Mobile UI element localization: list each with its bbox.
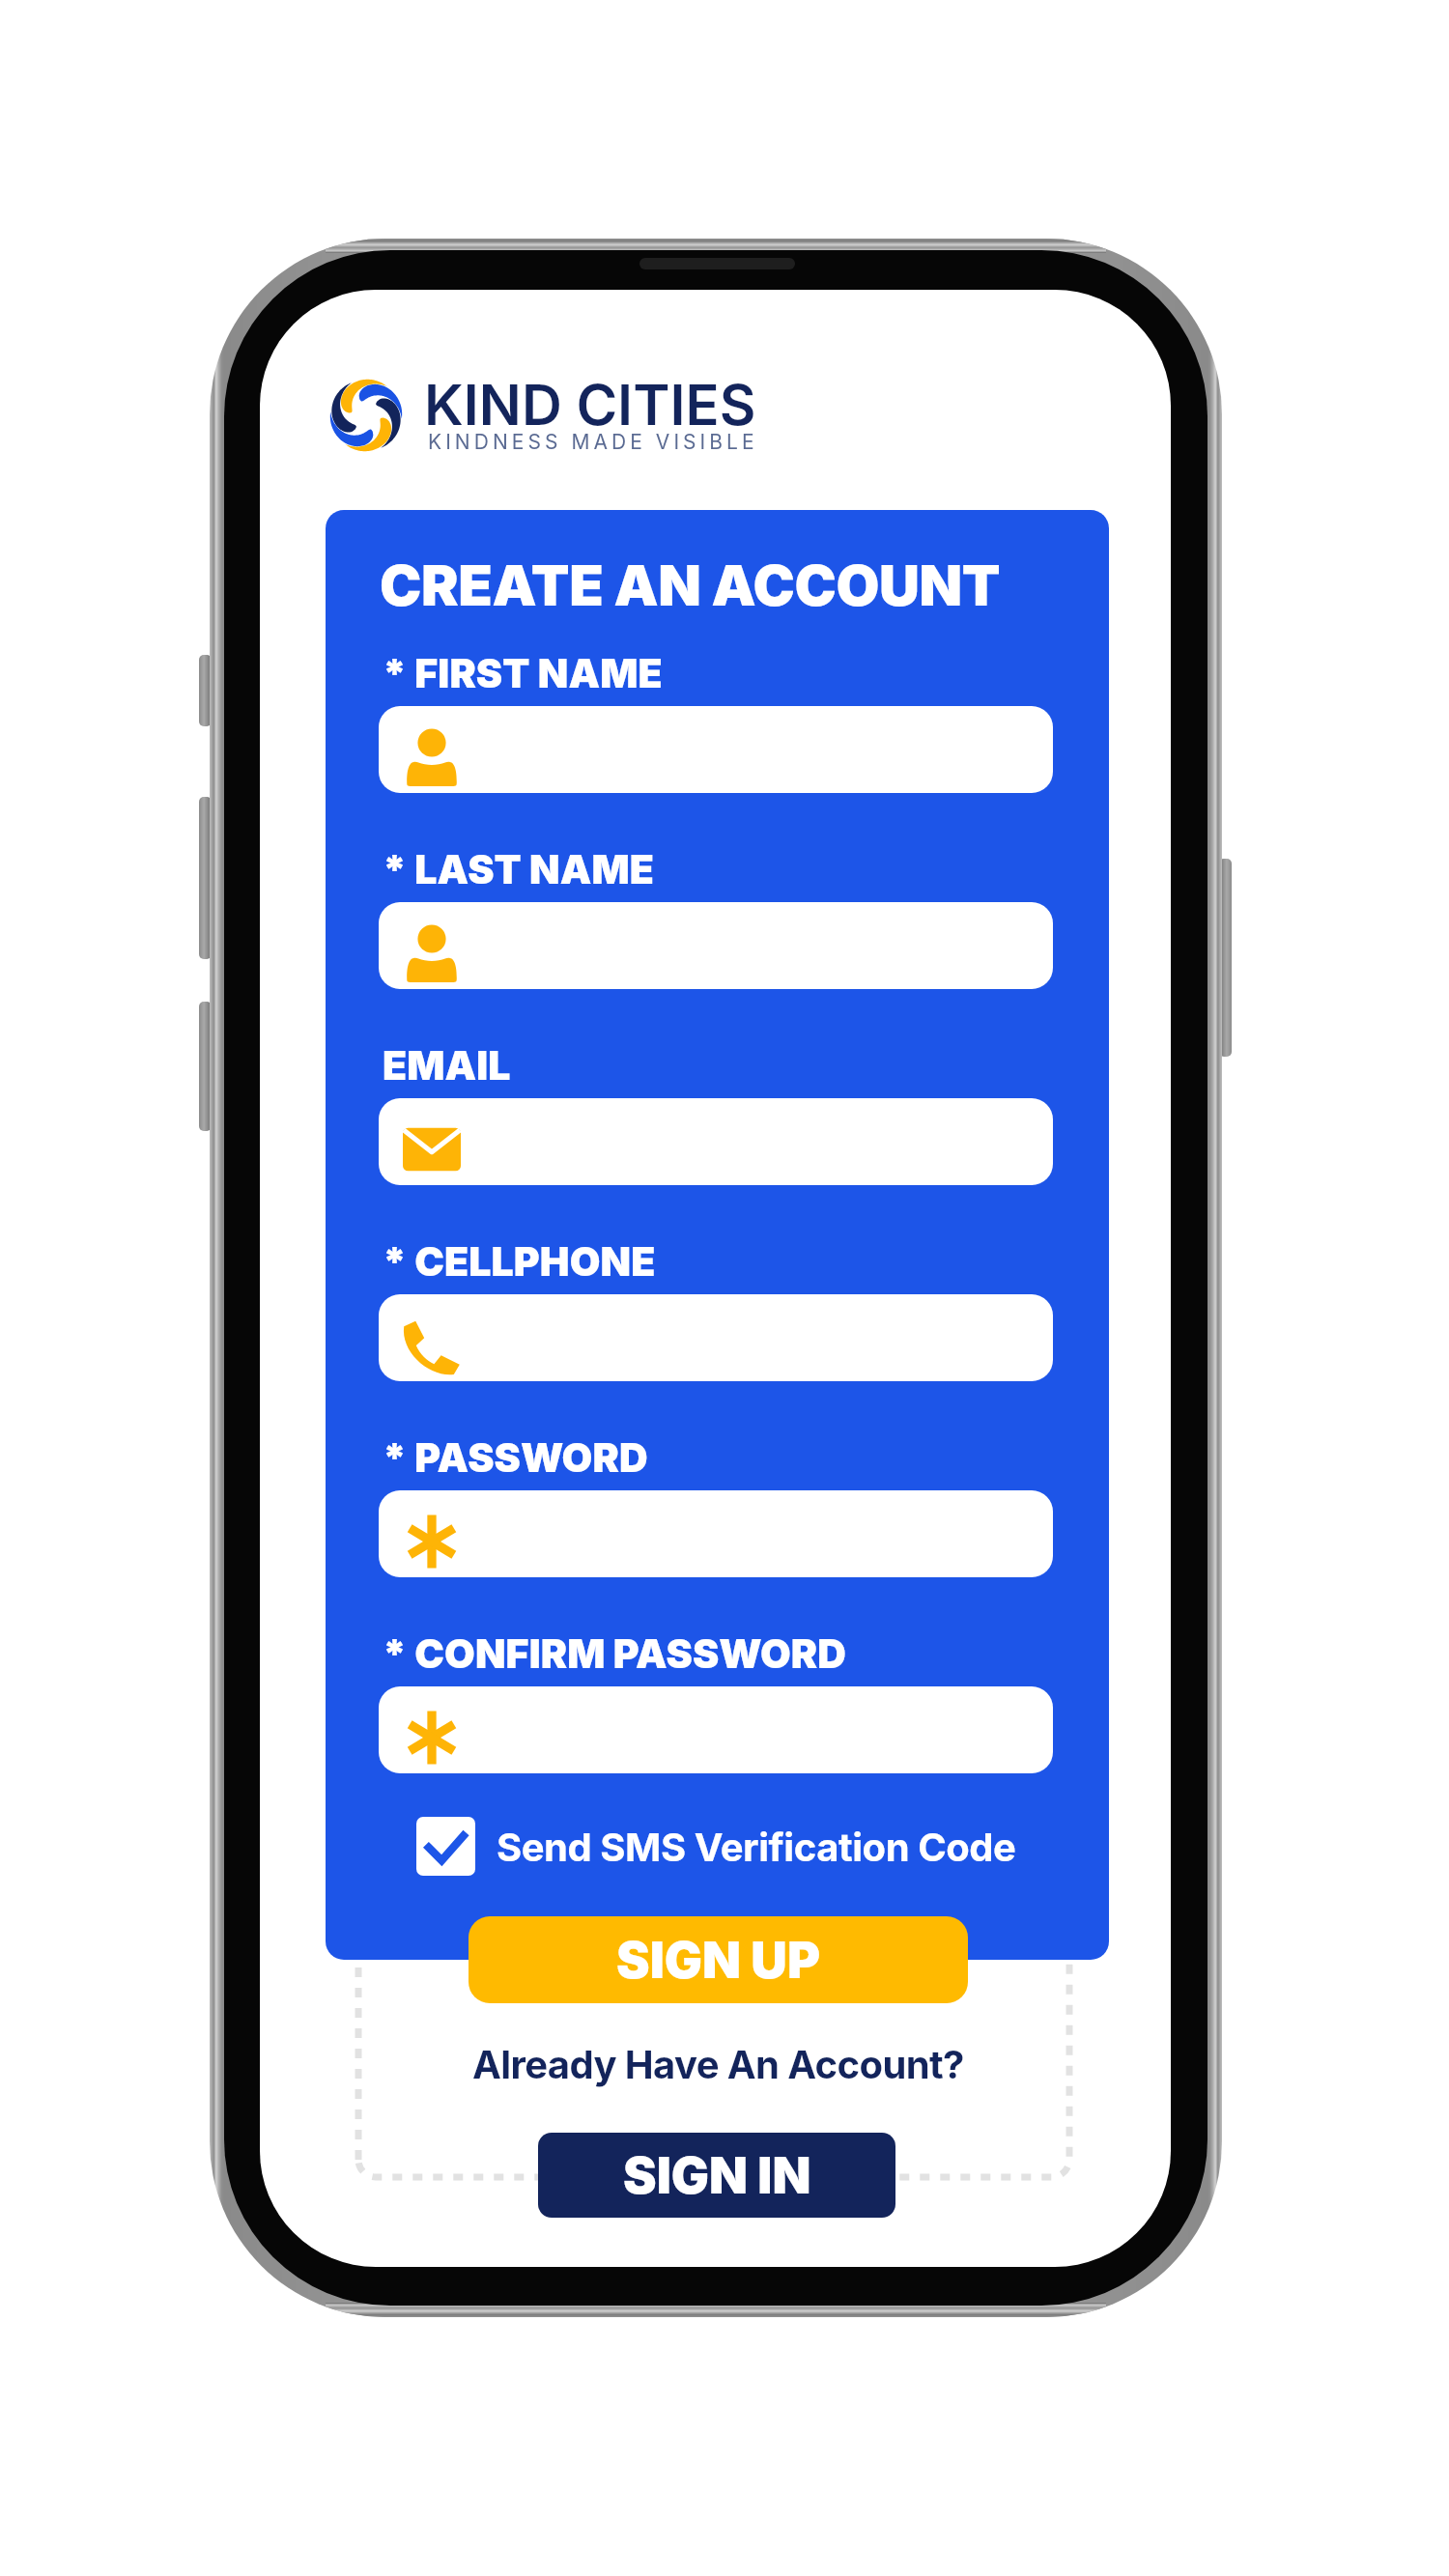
button[interactable]: EMAIL	[379, 1098, 1053, 1185]
button[interactable]: * FIRST NAME	[379, 706, 1053, 793]
button[interactable]: * PASSWORD	[379, 1490, 1053, 1577]
staticText: * PASSWORD	[383, 1433, 648, 1482]
button[interactable]: * CONFIRM PASSWORD	[379, 1686, 1053, 1773]
button[interactable]: Send SMS Verification Code	[416, 1817, 1016, 1876]
staticText: EMAIL	[383, 1041, 511, 1090]
staticText: SIGN IN	[623, 2145, 811, 2206]
staticText: * FIRST NAME	[383, 649, 663, 697]
button[interactable]: * LAST NAME	[379, 902, 1053, 989]
staticText: Send SMS Verification Code	[497, 1824, 1016, 1870]
staticText: KIND CITIES	[424, 371, 756, 439]
button[interactable]: * CELLPHONE	[379, 1294, 1053, 1381]
staticText: * CELLPHONE	[383, 1237, 656, 1286]
staticText: * CONFIRM PASSWORD	[383, 1629, 847, 1678]
staticText: KINDNESS MADE VISIBLE	[428, 430, 758, 454]
staticText: * LAST NAME	[383, 845, 654, 893]
button[interactable]: SIGN UP	[469, 1916, 968, 2003]
staticText: CREATE AN ACCOUNT	[380, 552, 1001, 619]
staticText: SIGN UP	[616, 1930, 821, 1991]
button[interactable]: SIGN IN	[538, 2133, 895, 2218]
button[interactable]: Already Have An Account?	[472, 2041, 964, 2087]
